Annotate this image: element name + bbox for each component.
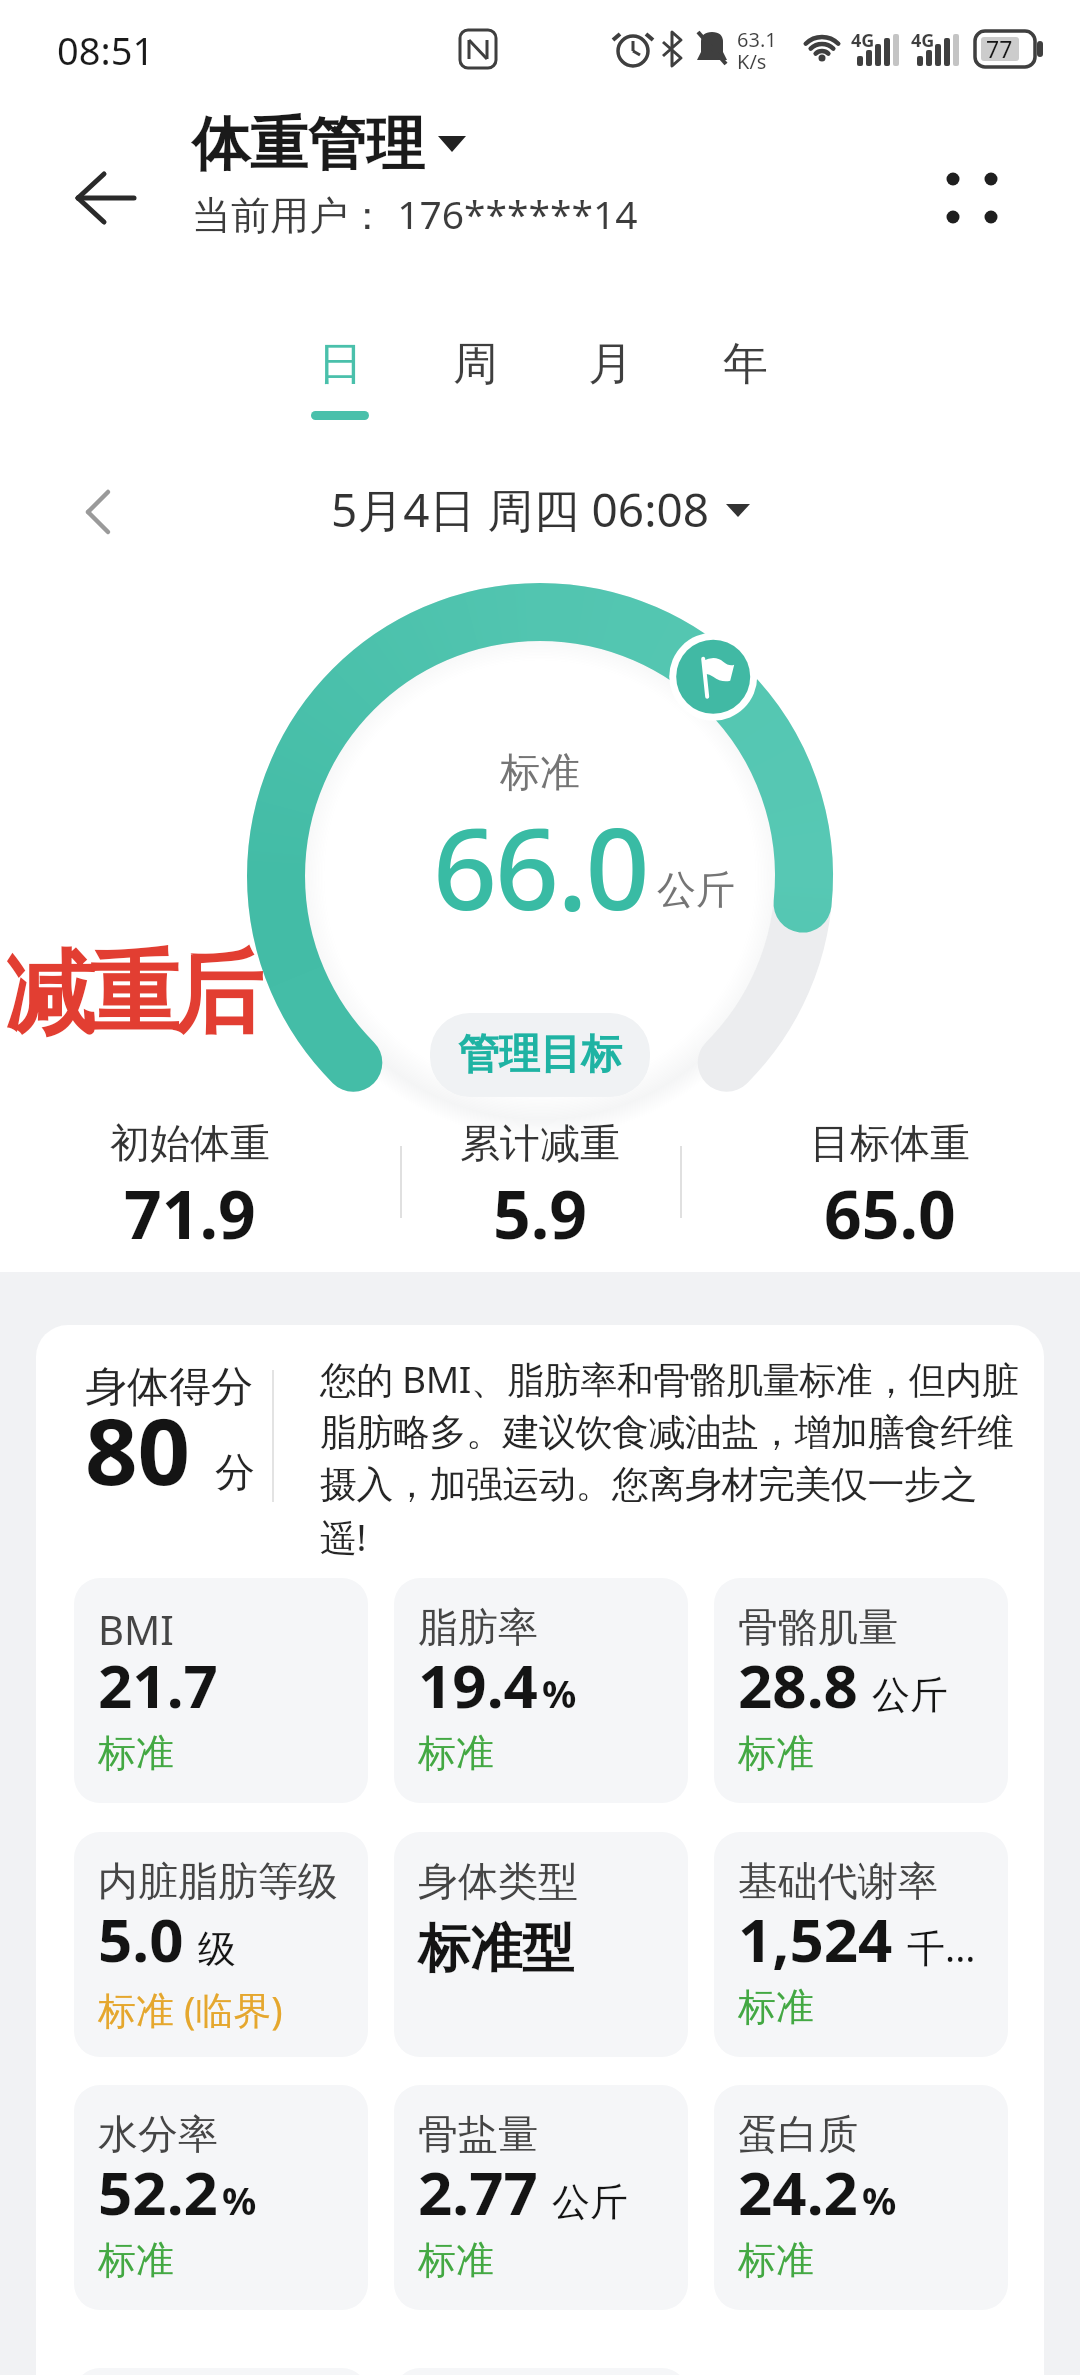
- staticText: 骨盐量: [418, 2109, 538, 2159]
- staticText: 19.4: [418, 1644, 538, 1726]
- staticText: 公斤: [552, 2178, 628, 2226]
- staticText: 4G: [911, 28, 935, 53]
- staticText: 千...: [907, 1921, 976, 1973]
- button[interactable]: 内脏脂肪等级: [74, 1832, 368, 2057]
- staticText: 标准: [98, 2236, 174, 2284]
- button[interactable]: 年: [700, 330, 790, 425]
- staticText: 内脏脂肪等级: [98, 1856, 338, 1906]
- staticText: 标准: [418, 1729, 494, 1777]
- staticText: 身体得分: [85, 1361, 253, 1414]
- staticText: 月: [588, 336, 633, 393]
- button[interactable]: [60, 160, 150, 240]
- staticText: 65.0: [824, 1168, 956, 1258]
- staticText: 脂肪率: [418, 1602, 538, 1652]
- staticText: 08:51: [57, 24, 155, 76]
- staticText: 累计减重: [460, 1118, 620, 1168]
- staticText: 80: [85, 1387, 191, 1512]
- staticText: 体重管理: [192, 108, 424, 181]
- button[interactable]: BMI: [74, 1578, 368, 1803]
- button[interactable]: 蛋白质: [714, 2085, 1008, 2310]
- button[interactable]: 月: [565, 330, 655, 425]
- staticText: 标准: [738, 2236, 814, 2284]
- staticText: 您的 BMI、脂肪率和骨骼肌量标准，但内脏 脂肪略多。建议饮食减油盐，增加膳食纤…: [320, 1353, 1019, 1562]
- staticText: 63.1 K/s: [737, 26, 777, 75]
- staticText: %: [222, 2174, 257, 2226]
- staticText: 身体类型: [418, 1856, 578, 1906]
- staticText: 71.9: [124, 1168, 256, 1258]
- button[interactable]: 身体类型: [394, 1832, 688, 2057]
- button[interactable]: 体重管理: [192, 108, 638, 240]
- staticText: 骨骼肌量: [738, 1602, 898, 1652]
- button[interactable]: 水分率: [74, 2085, 368, 2310]
- staticText: 77: [986, 33, 1013, 64]
- staticText: 4G: [851, 28, 875, 53]
- staticText: 公斤: [872, 1671, 948, 1719]
- button[interactable]: 周: [430, 330, 520, 425]
- staticText: 5.9: [493, 1168, 588, 1258]
- button[interactable]: 骨骼肌量: [714, 1578, 1008, 1803]
- staticText: BMI: [98, 1602, 174, 1656]
- staticText: 基础代谢率: [738, 1856, 938, 1906]
- staticText: 管理目标: [458, 1029, 622, 1081]
- staticText: 标准型: [418, 1916, 574, 1982]
- button[interactable]: 脂肪率: [394, 1578, 688, 1803]
- staticText: 24.2: [738, 2151, 858, 2233]
- staticText: 日: [318, 336, 363, 393]
- staticText: 初始体重: [110, 1118, 270, 1168]
- staticText: 5.0: [98, 1898, 184, 1980]
- staticText: 标准 (临界): [98, 1983, 283, 2035]
- button[interactable]: 基础代谢率: [714, 1832, 1008, 2057]
- button[interactable]: 骨盐量: [394, 2085, 688, 2310]
- button[interactable]: 目标体重: [740, 1118, 1040, 1258]
- staticText: 周: [453, 336, 498, 393]
- staticText: 标准: [500, 747, 580, 797]
- staticText: 1,524: [738, 1898, 893, 1980]
- staticText: 公斤: [657, 865, 735, 914]
- staticText: 66.0: [433, 790, 648, 943]
- staticText: 年: [723, 336, 768, 393]
- button[interactable]: 日: [295, 330, 385, 425]
- staticText: 标准: [738, 1729, 814, 1777]
- staticText: 52.2: [98, 2151, 218, 2233]
- button[interactable]: 初始体重: [40, 1118, 340, 1258]
- staticText: 21.7: [98, 1644, 218, 1726]
- staticText: 水分率: [98, 2109, 218, 2159]
- staticText: 当前用户： 176******14: [192, 187, 638, 240]
- staticText: 28.8: [738, 1644, 858, 1726]
- staticText: 级: [198, 1925, 236, 1973]
- staticText: 标准: [98, 1729, 174, 1777]
- button[interactable]: [925, 150, 1020, 245]
- staticText: 减重后: [8, 937, 260, 1050]
- staticText: 目标体重: [810, 1118, 970, 1168]
- staticText: 分: [215, 1447, 255, 1497]
- staticText: %: [862, 2174, 897, 2226]
- button[interactable]: 管理目标: [430, 1013, 650, 1097]
- button[interactable]: 5月4日 周四 06:08: [331, 478, 750, 541]
- staticText: 标准: [418, 2236, 494, 2284]
- staticText: 标准: [738, 1983, 814, 2031]
- staticText: 2.77: [418, 2151, 538, 2233]
- staticText: 蛋白质: [738, 2109, 858, 2159]
- staticText: 5月4日 周四 06:08: [331, 478, 710, 541]
- staticText: %: [542, 1667, 577, 1719]
- button[interactable]: 累计减重: [390, 1118, 690, 1258]
